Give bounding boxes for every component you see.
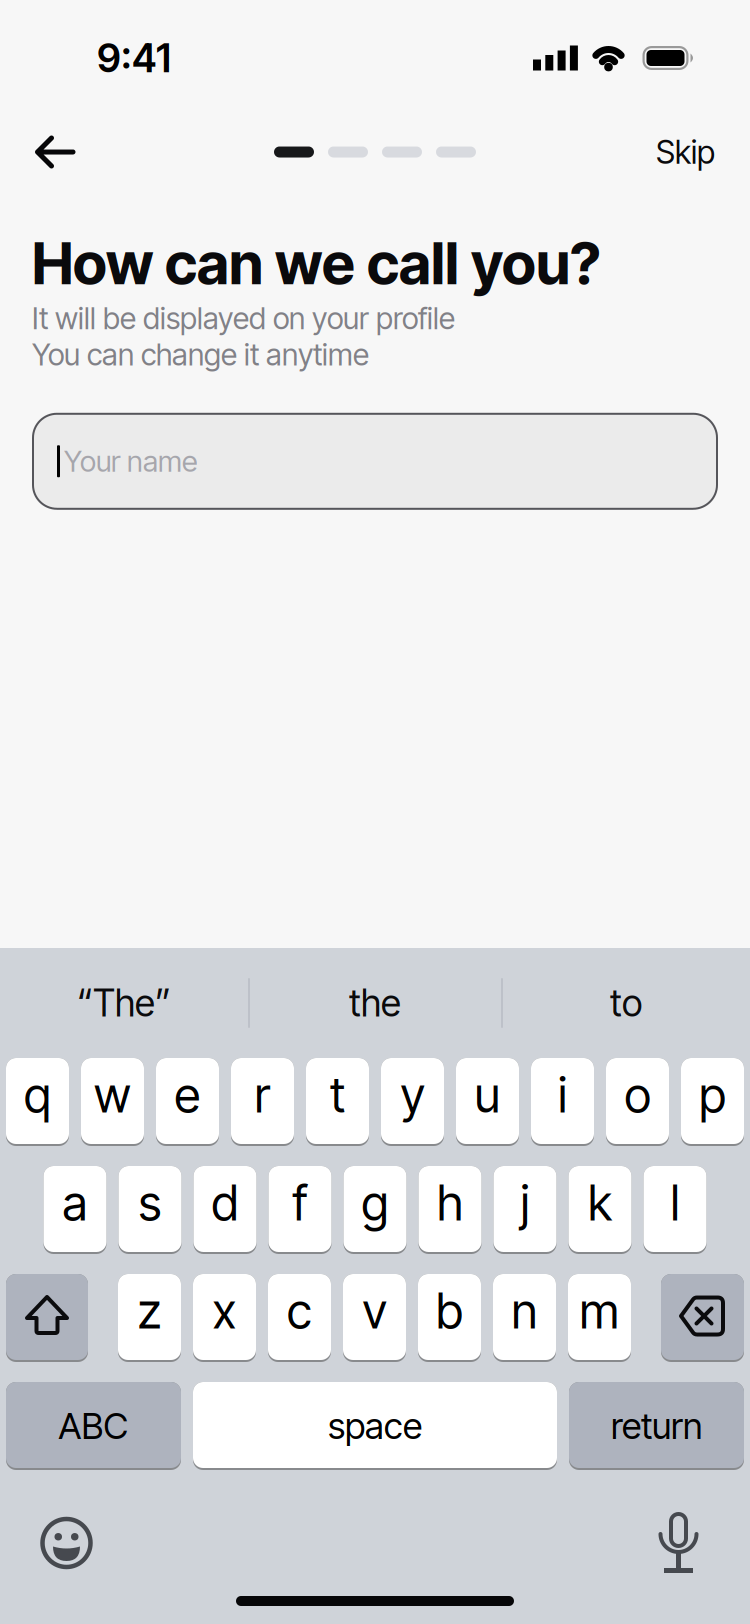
button[interactable]: m: [568, 1274, 631, 1362]
button[interactable]: z: [118, 1274, 181, 1362]
staticText: 9:41: [97, 34, 171, 82]
staticText: g: [361, 1174, 388, 1232]
button[interactable]: Skip: [656, 133, 750, 171]
staticText: return: [611, 1404, 702, 1448]
button[interactable]: return: [569, 1382, 744, 1470]
staticText: “The”: [77, 981, 171, 1025]
button[interactable]: l: [643, 1166, 706, 1254]
staticText: x: [212, 1282, 236, 1340]
staticText: r: [254, 1066, 270, 1124]
staticText: a: [62, 1174, 87, 1232]
staticText: How can we call you?: [32, 228, 601, 298]
staticText: j: [520, 1174, 529, 1232]
staticText: e: [174, 1066, 200, 1124]
staticText: o: [624, 1066, 650, 1124]
button[interactable]: Dictation: [659, 1512, 750, 1574]
button[interactable]: Emoji: [0, 1516, 93, 1569]
button[interactable]: s: [118, 1166, 181, 1254]
staticText: u: [474, 1066, 500, 1124]
staticText: n: [511, 1282, 537, 1340]
button[interactable]: b: [418, 1274, 481, 1362]
button[interactable]: r: [231, 1058, 294, 1146]
staticText: z: [137, 1282, 161, 1340]
staticText: c: [287, 1282, 312, 1340]
staticText: d: [211, 1174, 238, 1232]
button[interactable]: c: [268, 1274, 331, 1362]
button[interactable]: p: [681, 1058, 744, 1146]
button[interactable]: ABC: [6, 1382, 181, 1470]
button[interactable]: v: [343, 1274, 406, 1362]
staticText: w: [94, 1066, 131, 1124]
staticText: q: [24, 1066, 51, 1124]
button[interactable]: g: [343, 1166, 406, 1254]
button[interactable]: w: [81, 1058, 144, 1146]
staticText: f: [292, 1174, 307, 1232]
button[interactable]: i: [531, 1058, 594, 1146]
button[interactable]: q: [6, 1058, 69, 1146]
staticText: to: [610, 981, 642, 1025]
staticText: s: [138, 1174, 161, 1232]
button[interactable]: a: [43, 1166, 106, 1254]
button[interactable]: Delete: [661, 1274, 744, 1362]
staticText: p: [699, 1066, 726, 1124]
staticText: b: [436, 1282, 463, 1340]
button[interactable]: n: [493, 1274, 556, 1362]
button[interactable]: h: [418, 1166, 481, 1254]
staticText: m: [579, 1282, 619, 1340]
staticText: k: [588, 1174, 612, 1232]
button[interactable]: to: [502, 948, 750, 1058]
staticText: t: [330, 1066, 345, 1124]
button[interactable]: space: [193, 1382, 557, 1470]
staticText: It will be displayed on your profile You…: [32, 300, 455, 373]
button[interactable]: “The”: [0, 948, 248, 1058]
staticText: Skip: [656, 133, 715, 171]
button[interactable]: t: [306, 1058, 369, 1146]
button[interactable]: k: [568, 1166, 631, 1254]
button[interactable]: the: [248, 948, 502, 1058]
button[interactable]: Back: [0, 135, 76, 169]
button[interactable]: y: [381, 1058, 444, 1146]
button[interactable]: Shift: [6, 1274, 88, 1362]
staticText: space: [328, 1404, 422, 1448]
button[interactable]: j: [493, 1166, 556, 1254]
staticText: the: [349, 981, 401, 1025]
button[interactable]: o: [606, 1058, 669, 1146]
button[interactable]: u: [456, 1058, 519, 1146]
staticText: i: [558, 1066, 567, 1124]
staticText: ABC: [58, 1404, 128, 1448]
button[interactable]: d: [193, 1166, 256, 1254]
button[interactable]: Your name: [32, 413, 718, 510]
staticText: Your name: [64, 444, 197, 479]
staticText: y: [400, 1066, 424, 1124]
button[interactable]: x: [193, 1274, 256, 1362]
button[interactable]: e: [156, 1058, 219, 1146]
staticText: v: [362, 1282, 386, 1340]
staticText: l: [670, 1174, 679, 1232]
staticText: h: [437, 1174, 463, 1232]
button[interactable]: f: [268, 1166, 331, 1254]
